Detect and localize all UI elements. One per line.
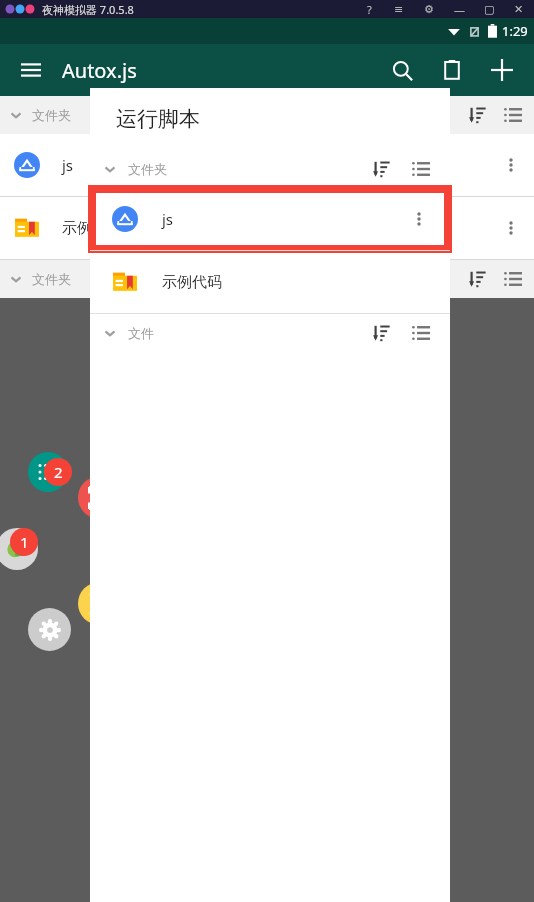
staticText: 运行脚本 [116, 106, 200, 132]
staticText: 文件 [128, 325, 154, 341]
staticText: 1:29 [502, 22, 528, 40]
button[interactable]: Window control — [444, 0, 474, 18]
button[interactable]: Add [482, 50, 522, 90]
staticText: js [162, 209, 174, 229]
button[interactable]: Window control ? [354, 0, 384, 18]
staticText: 文件夹 [32, 271, 71, 287]
staticText: 文件夹 [128, 161, 167, 177]
staticText: ✕ [514, 3, 524, 16]
button[interactable]: Close [78, 582, 121, 625]
button[interactable]: Sort [368, 156, 394, 182]
staticText: ▢ [484, 3, 495, 16]
button[interactable]: 文件夹 [90, 150, 450, 188]
button[interactable]: Floating menu [28, 452, 68, 492]
button[interactable]: Settings [28, 608, 71, 651]
staticText: 示例代码 [62, 219, 122, 238]
staticText: 夜神模拟器 7.0.5.8 [42, 2, 134, 17]
staticText: ⚙ [424, 3, 434, 16]
button[interactable]: View mode [408, 320, 434, 346]
staticText: 示例代码 [162, 273, 222, 292]
button[interactable]: Search [382, 50, 422, 90]
button[interactable]: Sort [368, 320, 394, 346]
button[interactable]: Capture layout [78, 476, 121, 519]
staticText: — [454, 2, 465, 17]
button[interactable]: More options [404, 204, 434, 234]
staticText: js [62, 155, 74, 175]
button[interactable]: Window control ✕ [504, 0, 534, 18]
button[interactable]: js [90, 188, 450, 250]
button[interactable]: View mode [408, 156, 434, 182]
button[interactable]: Log [432, 50, 472, 90]
button[interactable]: Window control ≡ [384, 0, 414, 18]
staticText: ≡ [394, 3, 404, 16]
staticText: ? [367, 2, 372, 17]
staticText: 1 [20, 532, 29, 552]
staticText: 文件夹 [32, 107, 71, 123]
button[interactable]: Recorder [0, 528, 38, 570]
staticText: 2 [54, 462, 63, 482]
button[interactable]: Window control ⚙ [414, 0, 444, 18]
staticText: Autox.js [62, 57, 137, 84]
button[interactable]: 示例代码 [90, 251, 450, 313]
button[interactable]: Menu [12, 51, 50, 89]
button[interactable]: 文件 [90, 314, 450, 352]
button[interactable]: Window control ▢ [474, 0, 504, 18]
